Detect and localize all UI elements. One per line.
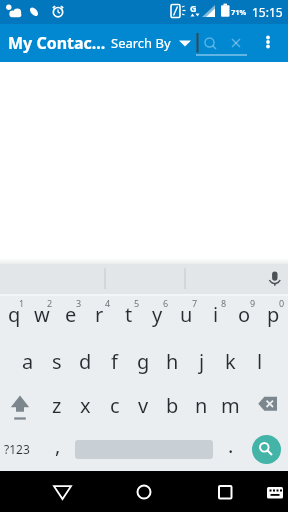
button[interactable]: . [216, 427, 245, 471]
staticText: q [8, 301, 21, 328]
staticText: 0 [279, 297, 285, 309]
button[interactable]: h [158, 339, 187, 383]
button[interactable]: l [245, 339, 274, 383]
button[interactable] [260, 471, 288, 512]
staticText: 15:15 [252, 4, 283, 20]
button[interactable]: d [71, 339, 100, 383]
staticText: c [110, 392, 120, 419]
staticText: z [52, 392, 62, 419]
staticText: l [257, 348, 263, 375]
button[interactable] [208, 471, 242, 512]
button[interactable]: j [187, 339, 216, 383]
button[interactable]: s [42, 339, 71, 383]
staticText: j [199, 348, 205, 375]
staticText: u [180, 301, 193, 328]
button[interactable]: 2 [28, 296, 56, 339]
staticText: b [166, 392, 179, 419]
staticText: e [65, 301, 77, 328]
button[interactable]: 9 [230, 296, 259, 339]
button[interactable]: z [42, 383, 71, 427]
button[interactable] [0, 383, 42, 427]
button[interactable]: 6 [143, 296, 172, 339]
button[interactable]: n [187, 383, 216, 427]
staticText: G [190, 2, 197, 14]
button[interactable] [72, 427, 216, 471]
staticText: 3 [76, 297, 82, 309]
button[interactable]: 5 [114, 296, 143, 339]
button[interactable]: 8 [201, 296, 230, 339]
button[interactable]: m [216, 383, 245, 427]
button[interactable]: 1 [0, 296, 28, 339]
button[interactable]: 7 [172, 296, 201, 339]
staticText: 9 [250, 297, 256, 309]
staticText: . [228, 432, 234, 459]
button[interactable]: f [100, 339, 129, 383]
button[interactable]: 0 [259, 296, 288, 339]
staticText: ?123 [4, 441, 30, 457]
staticText: 2 [47, 297, 53, 309]
button[interactable] [256, 24, 280, 62]
button[interactable] [194, 28, 248, 60]
button[interactable] [46, 471, 80, 512]
button[interactable]: 4 [85, 296, 114, 339]
button[interactable]: Search By [111, 24, 191, 62]
staticText: n [195, 392, 208, 419]
staticText: w [34, 301, 50, 328]
staticText: 1 [19, 297, 25, 309]
staticText: i [213, 301, 219, 328]
button[interactable]: g [129, 339, 158, 383]
staticText: h [166, 348, 179, 375]
button[interactable]: ?123 [0, 427, 43, 471]
staticText: k [225, 348, 236, 375]
staticText: r [95, 301, 104, 328]
staticText: v [138, 392, 149, 419]
staticText: t [125, 301, 133, 328]
button[interactable]: a [14, 339, 42, 383]
button[interactable]: x [71, 383, 100, 427]
staticText: f [111, 348, 118, 375]
staticText: o [238, 301, 251, 328]
button[interactable]: , [43, 427, 72, 471]
staticText: , [55, 432, 61, 459]
button[interactable]: 3 [56, 296, 85, 339]
staticText: Search By [111, 34, 171, 52]
staticText: m [221, 392, 240, 419]
button[interactable]: c [100, 383, 129, 427]
button[interactable]: v [129, 383, 158, 427]
staticText: d [79, 348, 92, 375]
staticText: 7 [192, 297, 198, 309]
button[interactable]: k [216, 339, 245, 383]
staticText: g [137, 348, 150, 375]
staticText: a [22, 348, 34, 375]
button[interactable]: b [158, 383, 187, 427]
staticText: My Contac... [8, 32, 106, 54]
staticText: 5 [134, 297, 140, 309]
button[interactable] [245, 427, 288, 471]
staticText: x [80, 392, 91, 419]
staticText: 8 [221, 297, 227, 309]
staticText: y [152, 301, 163, 328]
staticText: s [52, 348, 62, 375]
button[interactable] [245, 383, 288, 427]
staticText: 6 [163, 297, 169, 309]
button[interactable] [127, 471, 161, 512]
staticText: 4 [105, 297, 111, 309]
staticText: 71% [231, 7, 247, 17]
staticText: p [267, 301, 280, 328]
